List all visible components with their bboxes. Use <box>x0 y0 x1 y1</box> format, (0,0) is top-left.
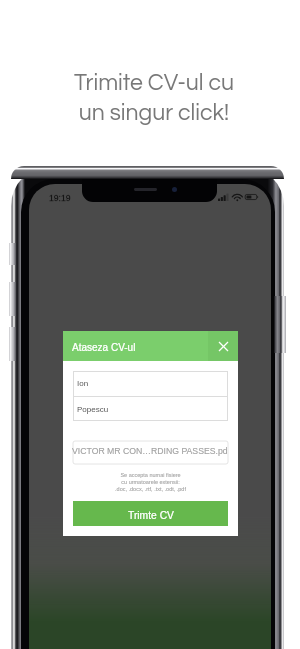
staticText: Se accepta numai fisiere cu urmatoarele … <box>63 472 238 492</box>
staticText: VICTOR MR CON…RDING PASSES.pdf <box>72 446 227 456</box>
staticText: Trimite CV-ul cu un singur click! <box>74 71 234 125</box>
staticText: 19:19 <box>49 193 71 203</box>
button[interactable]: Popescu <box>73 397 228 420</box>
button[interactable]: Ion <box>73 372 228 396</box>
button[interactable]: Close <box>208 331 238 361</box>
button[interactable]: VICTOR MR CON…RDING PASSES.pdf <box>73 441 228 464</box>
button[interactable]: Trimte CV <box>73 501 228 526</box>
staticText: Ion <box>77 379 89 388</box>
staticText: Trimte CV <box>128 510 174 522</box>
staticText: Ataseza CV-ul <box>72 342 136 353</box>
staticText: Popescu <box>77 405 109 414</box>
